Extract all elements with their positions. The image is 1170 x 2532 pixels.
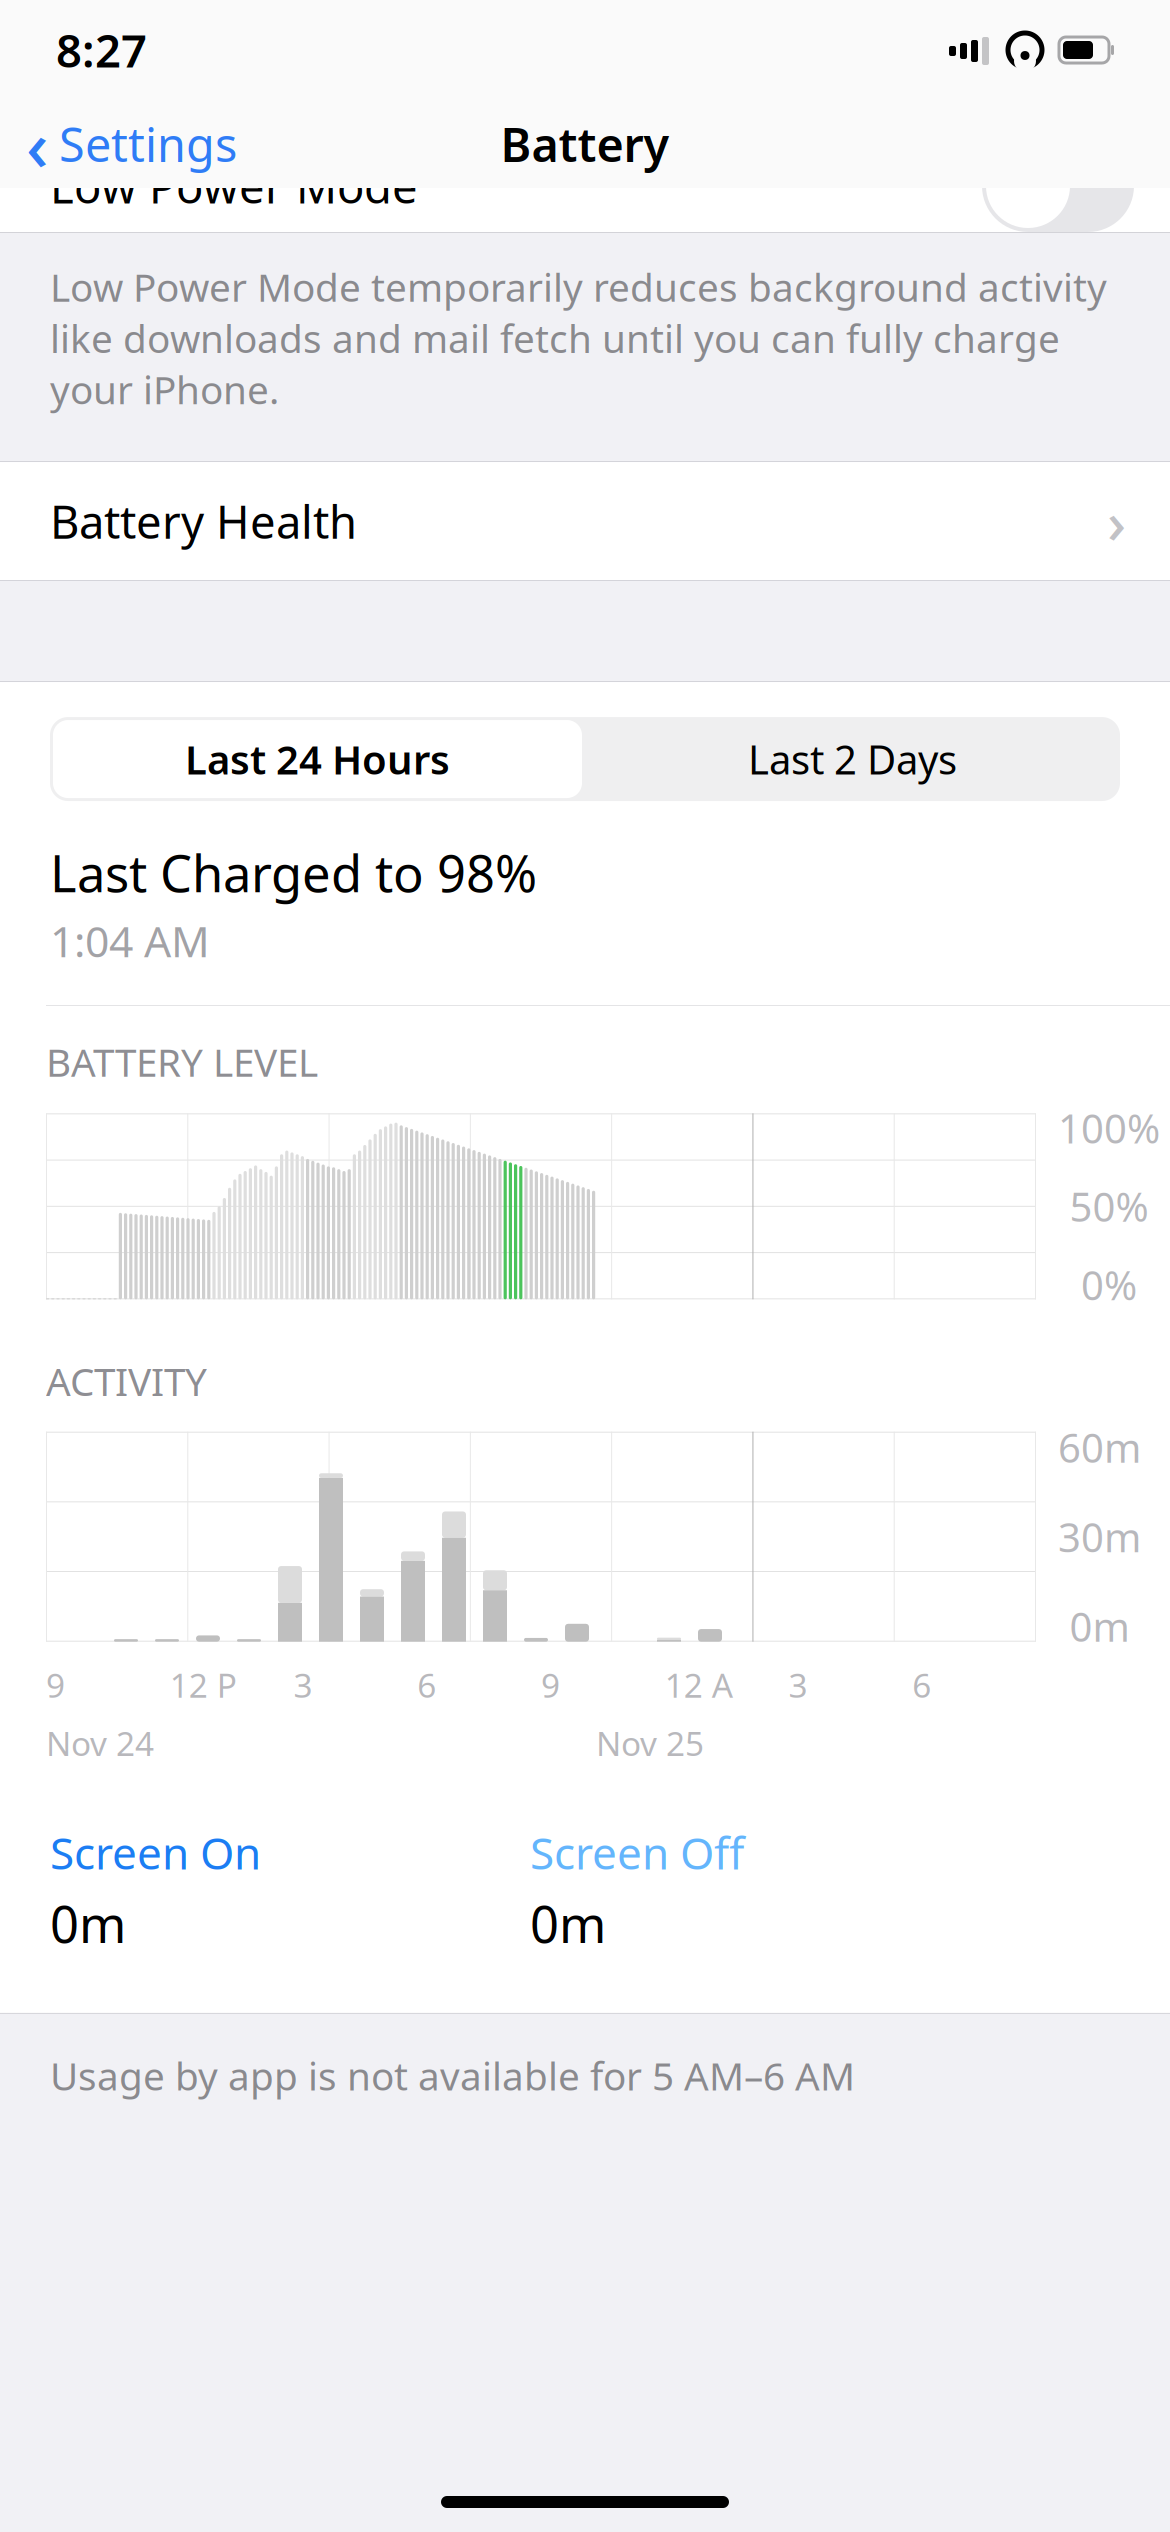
- staticText: BATTERY LEVEL: [46, 1036, 318, 1087]
- button[interactable]: ‹: [0, 90, 263, 198]
- staticText: 3: [788, 1663, 807, 1707]
- staticText: 6: [912, 1663, 931, 1707]
- staticText: 8:27: [56, 20, 147, 80]
- staticText: 1:04 AM: [50, 912, 210, 969]
- staticText: Last Charged to 98%: [50, 839, 537, 906]
- staticText: ›: [1107, 482, 1126, 560]
- staticText: Nov 25: [596, 1721, 704, 1765]
- staticText: 0m: [50, 1890, 126, 1957]
- staticText: 12 A: [665, 1663, 733, 1707]
- staticText: 50%: [1069, 1180, 1148, 1233]
- button[interactable]: Last 24 Hours: [50, 717, 585, 801]
- staticText: Last 24 Hours: [185, 732, 450, 786]
- staticText: Settings: [59, 113, 237, 175]
- staticText: 9: [46, 1663, 65, 1707]
- button[interactable]: Battery Health: [0, 462, 1170, 580]
- staticText: Screen Off: [530, 1823, 744, 1882]
- staticText: 12 P: [170, 1663, 237, 1707]
- staticText: 6: [417, 1663, 436, 1707]
- staticText: Screen On: [50, 1823, 261, 1882]
- staticText: Low Power Mode temporarily reduces backg…: [50, 261, 1107, 415]
- staticText: 9: [541, 1663, 560, 1707]
- staticText: Battery: [500, 113, 669, 175]
- staticText: 100%: [1058, 1101, 1160, 1154]
- staticText: 0%: [1081, 1258, 1137, 1311]
- staticText: Nov 24: [46, 1721, 154, 1765]
- staticText: 0m: [1069, 1600, 1129, 1653]
- staticText: Usage by app is not available for 5 AM–6…: [50, 2050, 855, 2101]
- button[interactable]: Last 2 Days: [585, 717, 1120, 801]
- staticText: Battery Health: [50, 491, 357, 551]
- staticText: Last 2 Days: [748, 732, 957, 786]
- staticText: Low Power Mode: [50, 156, 418, 216]
- staticText: 0m: [530, 1890, 606, 1957]
- staticText: 3: [293, 1663, 312, 1707]
- staticText: 30m: [1058, 1510, 1141, 1563]
- staticText: 60m: [1058, 1421, 1141, 1474]
- staticText: ACTIVITY: [46, 1355, 207, 1407]
- staticText: ‹: [26, 98, 49, 190]
